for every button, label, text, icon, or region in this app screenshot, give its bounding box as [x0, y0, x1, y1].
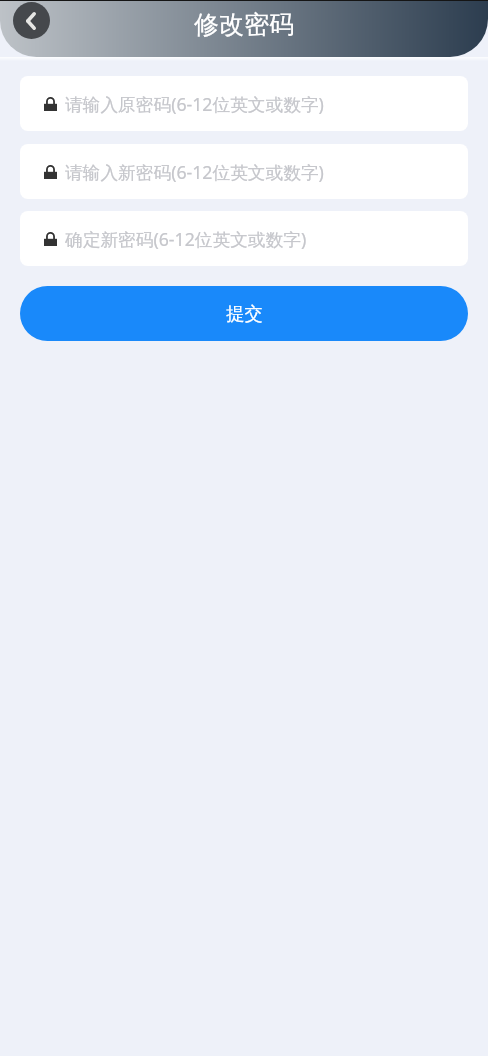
button[interactable]: 确定新密码(6-12位英文或数字): [20, 211, 468, 266]
staticText: 请输入原密码(6-12位英文或数字): [65, 92, 324, 116]
button[interactable]: 提交: [20, 286, 468, 341]
staticText: 提交: [226, 302, 263, 325]
button[interactable]: Back: [13, 2, 50, 39]
staticText: 修改密码: [194, 9, 294, 40]
button[interactable]: 请输入原密码(6-12位英文或数字): [20, 76, 468, 131]
staticText: 请输入新密码(6-12位英文或数字): [65, 160, 324, 184]
button[interactable]: 请输入新密码(6-12位英文或数字): [20, 144, 468, 199]
staticText: 确定新密码(6-12位英文或数字): [65, 227, 307, 251]
